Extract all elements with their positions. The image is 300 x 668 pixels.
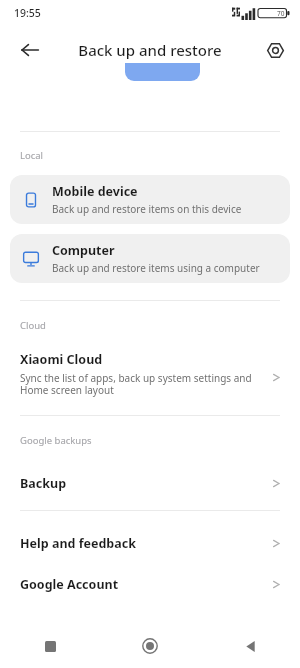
staticText: Back up and restore items using a comput… <box>52 261 260 275</box>
staticText: Cloud <box>20 319 46 332</box>
staticText: Backup <box>20 475 67 492</box>
button[interactable]: Backup <box>0 464 300 502</box>
staticText: Local <box>20 149 44 162</box>
button[interactable]: Xiaomi Cloud <box>0 347 300 405</box>
button[interactable]: Recents <box>0 624 100 668</box>
button[interactable]: Home <box>100 624 200 668</box>
staticText: Back up and restore <box>78 40 222 60</box>
staticText: Mobile device <box>52 183 138 200</box>
staticText: 70 <box>277 9 285 18</box>
staticText: Google backups <box>20 434 92 447</box>
button[interactable]: Mobile device <box>10 175 290 224</box>
staticText: Back up and restore items on this device <box>52 202 242 216</box>
button[interactable] <box>125 63 200 81</box>
button[interactable]: Back <box>200 624 300 668</box>
button[interactable]: Google Account <box>0 565 300 603</box>
staticText: Google Account <box>20 576 119 593</box>
button[interactable]: Back <box>10 30 50 70</box>
button[interactable]: Computer <box>10 234 290 283</box>
staticText: 19:55 <box>14 6 41 20</box>
staticText: Help and feedback <box>20 535 136 552</box>
staticText: Sync the list of apps, back up system se… <box>20 371 260 397</box>
button[interactable]: Settings <box>256 31 294 69</box>
button[interactable]: Help and feedback <box>0 524 300 562</box>
staticText: Computer <box>52 242 115 259</box>
staticText: Xiaomi Cloud <box>20 351 103 368</box>
